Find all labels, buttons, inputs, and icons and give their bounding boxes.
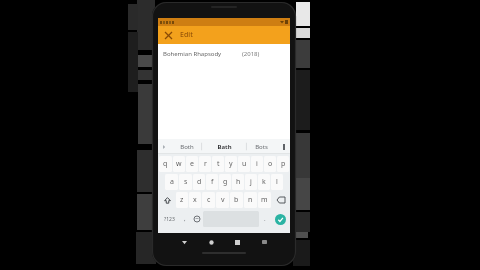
- button[interactable]: h: [232, 174, 244, 190]
- button[interactable]: x: [189, 192, 201, 208]
- staticText: z: [180, 195, 184, 205]
- button[interactable]: n: [244, 192, 257, 208]
- button[interactable]: Bath: [206, 139, 243, 154]
- button[interactable]: .: [260, 211, 270, 227]
- staticText: g: [223, 177, 228, 187]
- button[interactable]: z: [176, 192, 188, 208]
- button[interactable]: m: [258, 192, 271, 208]
- button[interactable]: e: [186, 156, 198, 172]
- button[interactable]: v: [216, 192, 229, 208]
- staticText: k: [262, 177, 266, 187]
- staticText: o: [268, 159, 273, 169]
- staticText: (2018): [242, 50, 260, 58]
- staticText: ,: [184, 215, 186, 223]
- button[interactable]: Back: [178, 236, 190, 248]
- button[interactable]: p: [277, 156, 289, 172]
- staticText: x: [193, 195, 197, 205]
- staticText: Edit: [180, 30, 193, 40]
- staticText: i: [256, 159, 258, 169]
- button[interactable]: o: [264, 156, 276, 172]
- staticText: c: [207, 195, 211, 205]
- button[interactable]: Menu: [280, 139, 288, 154]
- staticText: Bath: [217, 143, 232, 151]
- button[interactable]: ,: [180, 211, 190, 227]
- button[interactable]: Keyboard: [258, 236, 270, 248]
- staticText: w: [176, 159, 182, 169]
- staticText: n: [248, 195, 253, 205]
- staticText: e: [190, 159, 194, 169]
- button[interactable]: Both: [168, 139, 206, 154]
- staticText: l: [276, 177, 278, 187]
- button[interactable]: d: [193, 174, 205, 190]
- staticText: r: [204, 159, 207, 169]
- button[interactable]: Enter: [271, 211, 289, 227]
- button[interactable]: b: [230, 192, 243, 208]
- button[interactable]: y: [225, 156, 237, 172]
- staticText: v: [221, 195, 225, 205]
- button[interactable]: Recent apps: [231, 236, 243, 248]
- staticText: a: [170, 177, 174, 187]
- button[interactable]: t: [212, 156, 224, 172]
- button[interactable]: ?123: [159, 211, 179, 227]
- button[interactable]: w: [173, 156, 185, 172]
- button[interactable]: c: [202, 192, 215, 208]
- button[interactable]: More suggestions: [160, 139, 168, 154]
- staticText: Both: [180, 143, 194, 151]
- button[interactable]: l: [271, 174, 283, 190]
- staticText: Bohemian Rhapsody: [163, 50, 222, 58]
- staticText: p: [281, 159, 286, 169]
- staticText: h: [236, 177, 241, 187]
- staticText: s: [184, 177, 188, 187]
- staticText: y: [229, 159, 233, 169]
- button[interactable]: r: [199, 156, 211, 172]
- button[interactable]: j: [245, 174, 257, 190]
- staticText: Bots: [255, 143, 268, 151]
- staticText: ?123: [164, 216, 175, 223]
- button[interactable]: a: [165, 174, 178, 190]
- button[interactable]: i: [251, 156, 263, 172]
- button[interactable]: Home: [205, 236, 217, 248]
- staticText: q: [163, 159, 168, 169]
- button[interactable]: Backspace: [272, 192, 289, 208]
- button[interactable]: k: [258, 174, 270, 190]
- button[interactable]: Shift: [159, 192, 175, 208]
- button[interactable]: Close: [161, 28, 175, 42]
- button[interactable]: Emoji: [191, 211, 202, 227]
- staticText: b: [234, 195, 239, 205]
- button[interactable]: q: [159, 156, 172, 172]
- staticText: j: [250, 177, 252, 187]
- staticText: u: [242, 159, 247, 169]
- staticText: d: [197, 177, 202, 187]
- button[interactable]: Bots: [243, 139, 280, 154]
- button[interactable]: u: [238, 156, 250, 172]
- button[interactable]: f: [206, 174, 218, 190]
- staticText: f: [211, 177, 214, 187]
- button[interactable]: g: [219, 174, 231, 190]
- staticText: .: [264, 215, 266, 223]
- button[interactable]: Bohemian Rhapsody: [158, 44, 290, 64]
- button[interactable]: s: [179, 174, 192, 190]
- staticText: m: [261, 195, 268, 205]
- staticText: t: [217, 159, 220, 169]
